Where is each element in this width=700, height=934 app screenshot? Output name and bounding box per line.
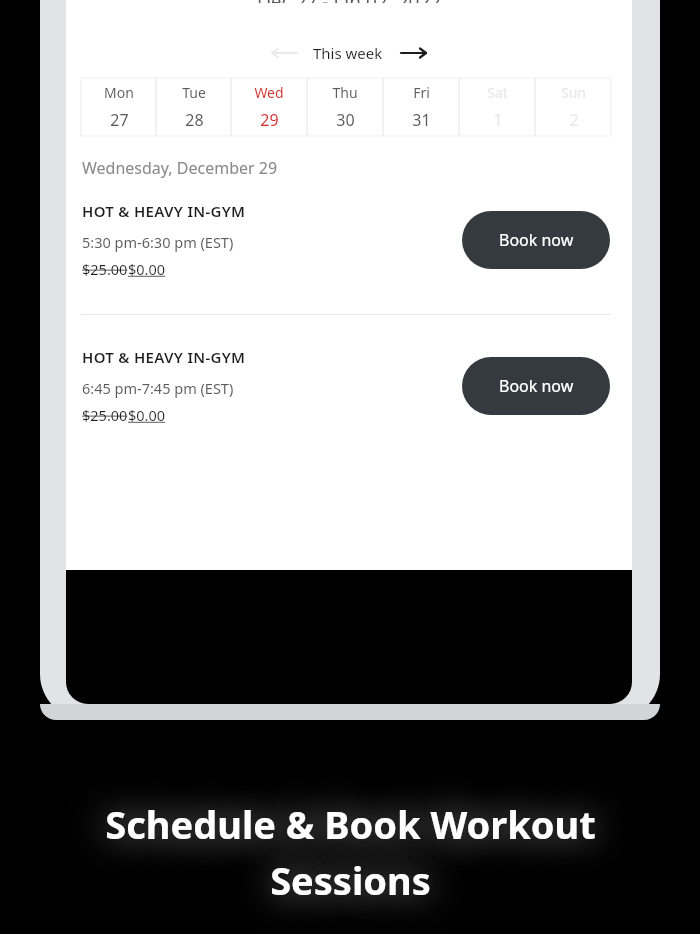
button[interactable]: Wed (231, 78, 307, 136)
staticText: Thu (332, 83, 358, 102)
button[interactable]: Thu (307, 78, 383, 136)
staticText: $25.00 (82, 259, 128, 279)
staticText: HOT & HEAVY IN-GYM (82, 347, 246, 367)
staticText: 1 (493, 109, 503, 131)
staticText: Wednesday, December 29 (82, 157, 278, 179)
staticText: Book now (499, 375, 574, 397)
staticText: Fri (413, 83, 430, 102)
staticText: Tue (182, 83, 206, 102)
button[interactable]: This week (313, 43, 383, 63)
staticText: Mon (104, 83, 134, 102)
staticText: 2 (569, 109, 579, 131)
staticText: This week (313, 43, 383, 63)
staticText: 30 (336, 109, 355, 131)
staticText: 28 (185, 109, 204, 131)
staticText: Sat (487, 83, 508, 102)
staticText: 29 (260, 109, 279, 131)
staticText: 6:45 pm-7:45 pm (EST) (82, 378, 234, 398)
staticText: 27 (110, 109, 129, 131)
button[interactable]: Book now (462, 211, 610, 269)
button[interactable]: Sun (535, 78, 611, 136)
staticText: 5:30 pm-6:30 pm (EST) (82, 232, 234, 252)
staticText: $0.00 (128, 259, 166, 279)
button[interactable]: Sat (459, 78, 535, 136)
button[interactable]: Book now (462, 357, 610, 415)
staticText: Wed (254, 83, 284, 102)
staticText: Sessions (270, 854, 431, 906)
staticText: Book now (499, 229, 574, 251)
staticText: 31 (412, 109, 431, 131)
button[interactable]: Next week (397, 40, 431, 66)
staticText: Schedule & Book Workout (105, 798, 596, 850)
button[interactable]: Fri (383, 78, 459, 136)
staticText: $0.00 (128, 405, 166, 425)
staticText: Dec 27 - Jan 02, 2022 (257, 0, 442, 3)
button[interactable]: Previous week (267, 40, 301, 66)
staticText: Sun (561, 83, 586, 102)
button[interactable]: Tue (156, 78, 231, 136)
staticText: $25.00 (82, 405, 128, 425)
button[interactable]: Mon (81, 78, 156, 136)
staticText: HOT & HEAVY IN-GYM (82, 201, 246, 221)
